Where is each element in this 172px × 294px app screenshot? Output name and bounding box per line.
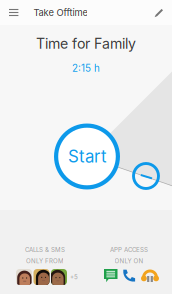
button[interactable]: Adjust duration [132,162,160,190]
button[interactable]: Edit [146,0,172,25]
staticText: ONLY ON [114,257,143,265]
staticText: ONLY FROM [26,257,64,265]
staticText: 2:15 h [72,62,100,74]
button[interactable]: Menu [0,0,33,25]
staticText: CALLS & SMS [25,246,65,253]
button[interactable]: Start [54,123,120,189]
staticText: Start [68,146,106,167]
staticText: +5 [70,273,78,281]
staticText: Take Offtime [33,7,87,18]
staticText: APP ACCESS [110,246,148,253]
staticText: Time for Family [36,35,136,52]
